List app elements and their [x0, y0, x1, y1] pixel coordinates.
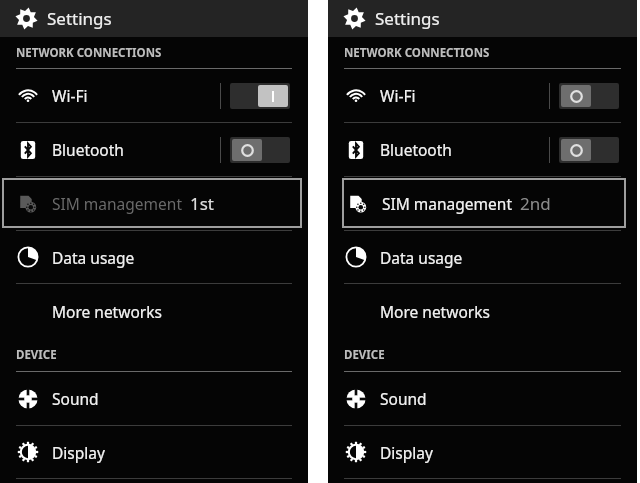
button[interactable]: SIM management [342, 178, 626, 228]
button[interactable]: Sound [0, 372, 308, 425]
button[interactable]: Wi-Fi [0, 69, 308, 122]
button[interactable]: Bluetooth [328, 123, 637, 176]
button[interactable]: Switch on [230, 83, 290, 109]
button[interactable]: Settings [328, 0, 637, 37]
staticText: DEVICE [344, 347, 385, 363]
staticText: Display [380, 442, 433, 463]
staticText: SIM management [382, 193, 512, 214]
button[interactable]: Bluetooth [0, 123, 308, 176]
button[interactable]: SIM management [2, 178, 302, 228]
staticText: Display [52, 442, 105, 463]
staticText: DEVICE [16, 347, 57, 363]
button[interactable]: Data usage [0, 231, 308, 283]
staticText: More networks [52, 301, 162, 322]
staticText: SIM management [52, 193, 182, 214]
staticText: Settings [47, 7, 112, 30]
staticText: Wi-Fi [380, 85, 416, 106]
staticText: Sound [380, 388, 427, 409]
staticText: Data usage [380, 247, 463, 268]
button[interactable]: Display [0, 426, 308, 478]
staticText: Settings [375, 7, 440, 30]
staticText: NETWORK CONNECTIONS [16, 45, 162, 61]
button[interactable]: More networks [0, 284, 308, 338]
button[interactable]: Sound [328, 372, 637, 425]
staticText: Wi-Fi [52, 85, 88, 106]
staticText: Bluetooth [380, 139, 452, 160]
staticText: NETWORK CONNECTIONS [344, 45, 490, 61]
button[interactable]: Switch off [230, 137, 290, 163]
staticText: 2nd [520, 192, 551, 215]
button[interactable]: Wi-Fi [328, 69, 637, 122]
staticText: Data usage [52, 247, 135, 268]
staticText: 1st [190, 192, 215, 215]
button[interactable]: Data usage [328, 231, 637, 283]
button[interactable]: Display [328, 426, 637, 478]
staticText: Sound [52, 388, 99, 409]
button[interactable]: Settings [0, 0, 308, 37]
button[interactable]: Switch off [559, 83, 619, 109]
button[interactable]: Switch off [559, 137, 619, 163]
staticText: More networks [380, 301, 490, 322]
staticText: Bluetooth [52, 139, 124, 160]
button[interactable]: More networks [328, 284, 637, 338]
